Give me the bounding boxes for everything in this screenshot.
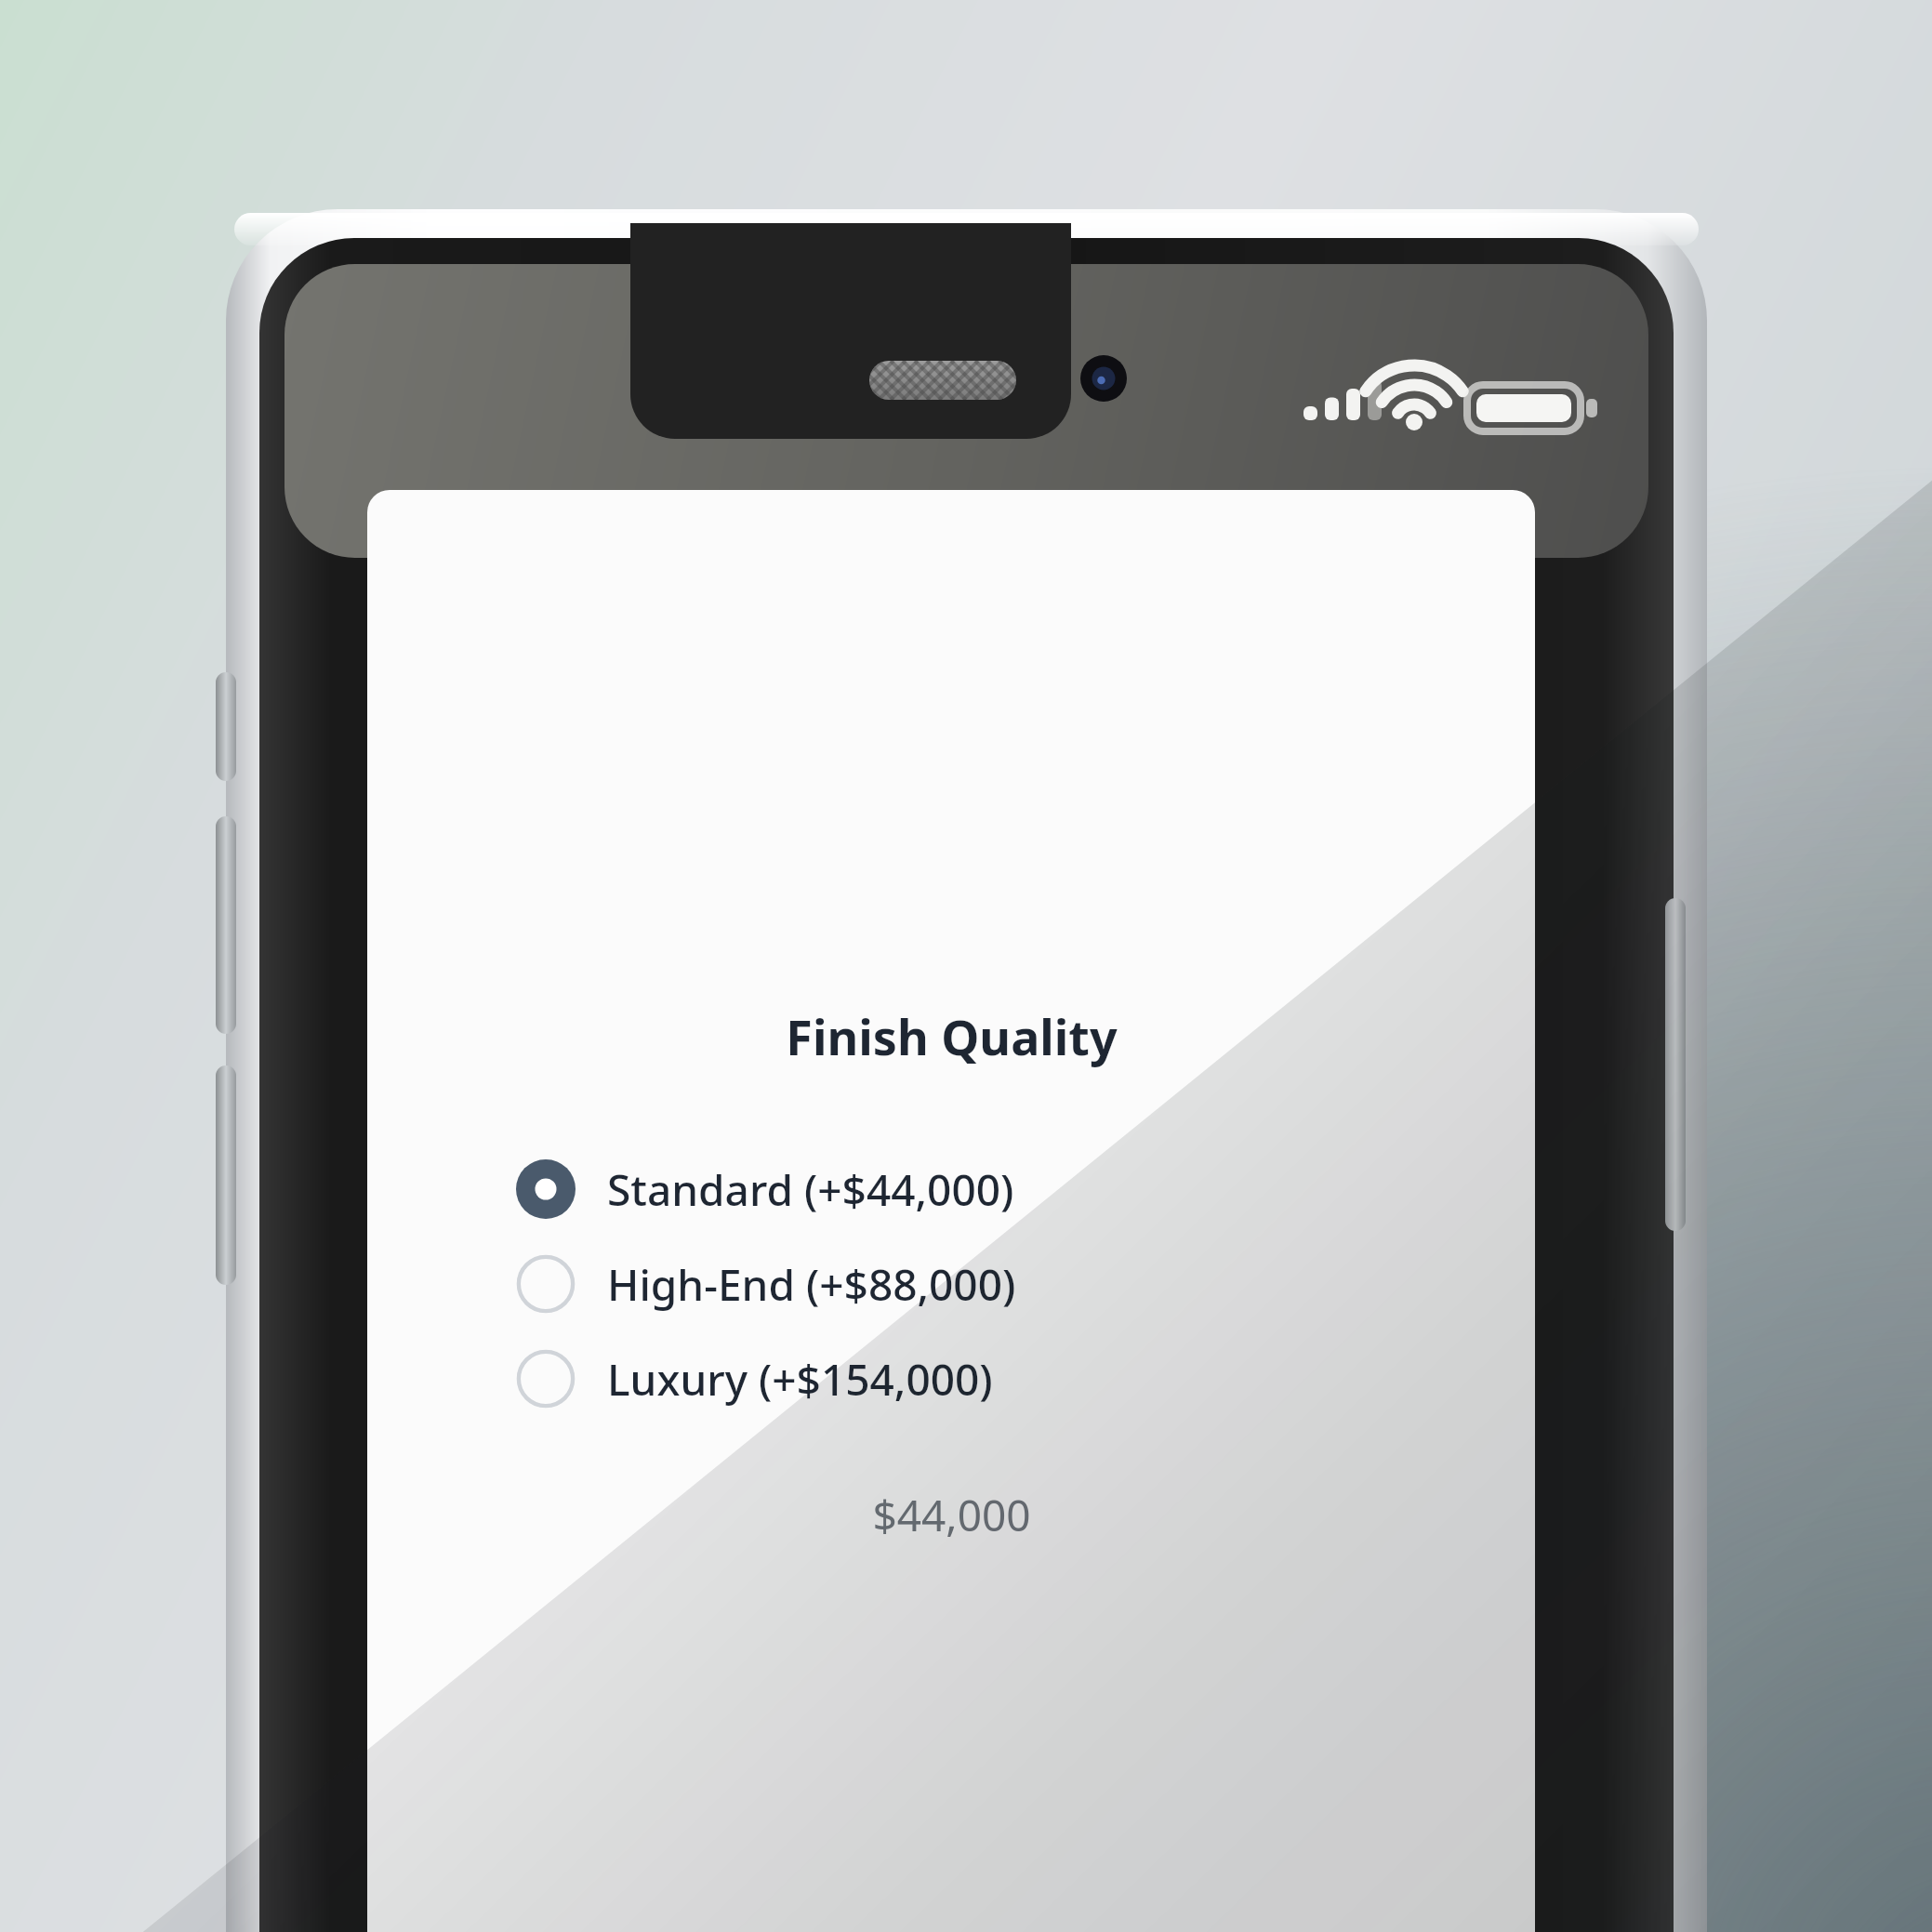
staticText: Standard (+$44,000) [607,1160,1014,1219]
staticText: Luxury (+$154,000) [607,1350,993,1409]
button[interactable]: High-End (+$88,000) [516,1237,1433,1331]
staticText: Finish Quality [786,1003,1118,1069]
button[interactable]: Luxury (+$154,000) [516,1331,1433,1426]
button[interactable]: Standard (+$44,000) [516,1142,1433,1237]
staticText: High-End (+$88,000) [607,1255,1016,1314]
staticText: $44,000 [872,1486,1031,1544]
